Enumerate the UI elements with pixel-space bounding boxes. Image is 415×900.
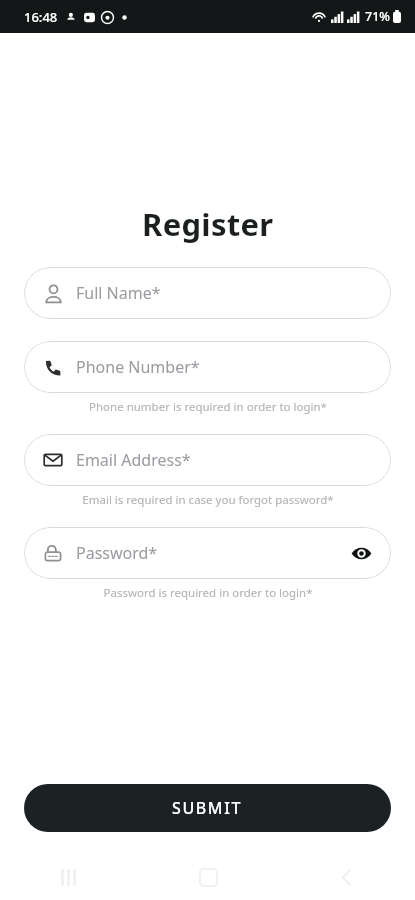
staticText: Password is required in order to login* (103, 585, 313, 601)
staticText: Password* (76, 542, 158, 564)
staticText: Full Name* (76, 282, 161, 304)
button[interactable]: Email Address* (24, 434, 391, 486)
button[interactable]: Password* (24, 527, 391, 579)
button[interactable]: Full Name* (24, 267, 391, 319)
staticText: Phone number is required in order to log… (89, 399, 327, 415)
staticText: 71% (365, 8, 390, 25)
button[interactable]: Phone Number* (24, 341, 391, 393)
staticText: Email Address* (76, 449, 191, 471)
staticText: Email is required in case you forgot pas… (82, 492, 334, 508)
staticText: 16:48 (24, 8, 58, 26)
staticText: Register (142, 203, 274, 245)
button[interactable]: Show password (349, 541, 373, 565)
staticText: SUBMIT (172, 797, 243, 819)
staticText: Phone Number* (76, 356, 200, 378)
button[interactable]: SUBMIT (24, 784, 391, 832)
